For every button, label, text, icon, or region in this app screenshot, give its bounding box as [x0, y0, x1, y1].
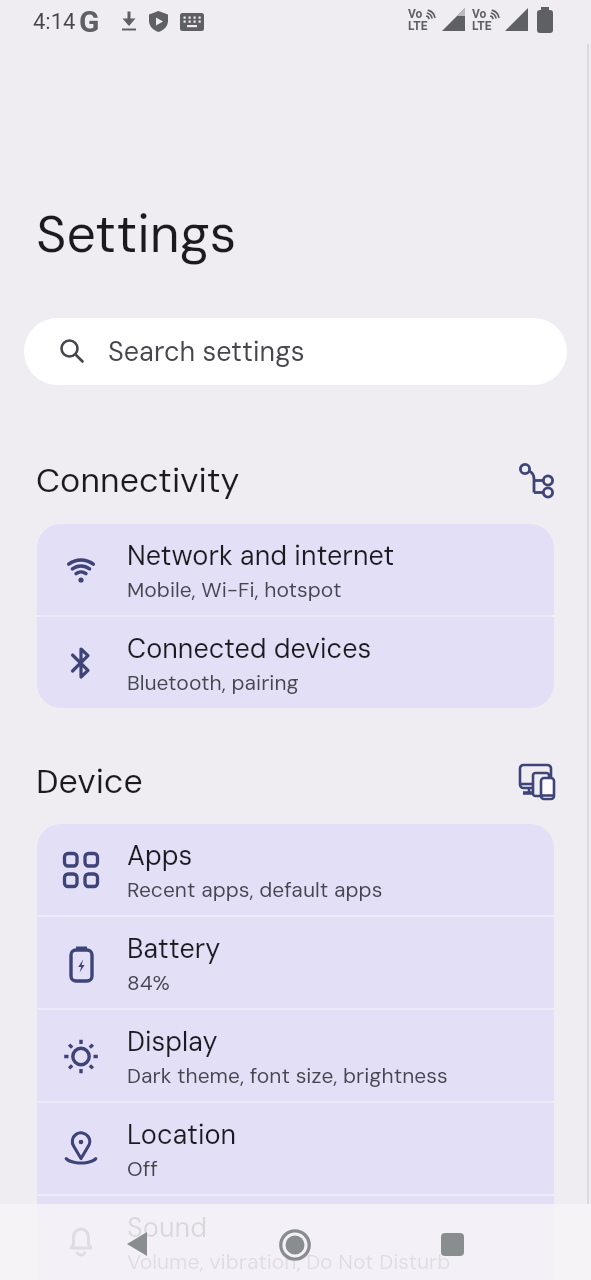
button[interactable]: Sound	[37, 1196, 554, 1280]
button[interactable]: Connected devices	[37, 617, 554, 708]
staticText: Search settings	[108, 334, 305, 369]
staticText: G	[79, 4, 100, 39]
button[interactable]	[435, 1227, 471, 1263]
staticText: Mobile, Wi-Fi, hotspot	[127, 576, 342, 603]
button[interactable]: Network and internet	[37, 524, 554, 615]
button[interactable]	[110, 1227, 160, 1263]
staticText: Vo	[472, 7, 487, 21]
button[interactable]: Search settings	[24, 318, 567, 385]
staticText: Off	[127, 1155, 158, 1182]
staticText: Location	[127, 1117, 237, 1152]
staticText: LTE	[408, 19, 428, 33]
staticText: Settings	[36, 200, 237, 268]
button[interactable]	[277, 1227, 313, 1263]
staticText: Device	[36, 759, 143, 803]
staticText: Network and internet	[127, 538, 395, 573]
staticText: Connected devices	[127, 631, 372, 666]
button[interactable]: Display	[37, 1010, 554, 1101]
staticText: Apps	[127, 838, 193, 873]
staticText: LTE	[472, 19, 492, 33]
staticText: Bluetooth, pairing	[127, 669, 299, 696]
staticText: Battery	[127, 931, 221, 966]
staticText: 84%	[127, 969, 170, 996]
button[interactable]: Location	[37, 1103, 554, 1194]
staticText: Display	[127, 1024, 218, 1059]
staticText: Vo	[408, 7, 423, 21]
staticText: Connectivity	[36, 458, 240, 502]
staticText: Dark theme, font size, brightness	[127, 1062, 448, 1089]
staticText: Recent apps, default apps	[127, 876, 383, 903]
button[interactable]: Battery	[37, 917, 554, 1008]
staticText: Sound	[127, 1210, 207, 1245]
staticText: 4:14	[33, 9, 76, 35]
staticText: Volume, vibration, Do Not Disturb	[127, 1248, 451, 1275]
button[interactable]: Apps	[37, 824, 554, 915]
